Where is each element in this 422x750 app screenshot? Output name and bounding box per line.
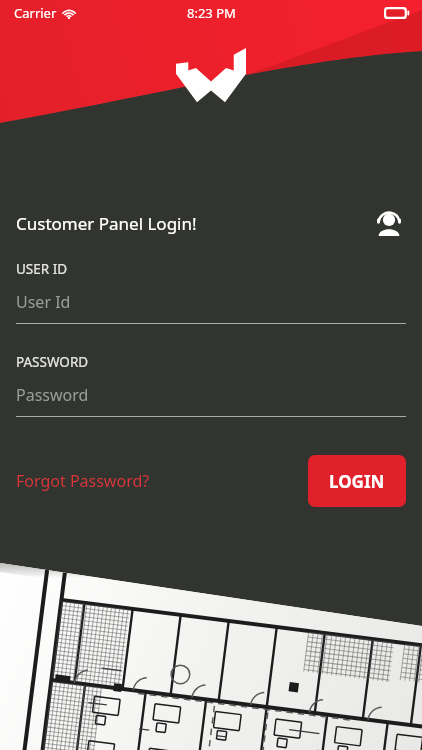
staticText: Carrier [14, 4, 57, 22]
button[interactable]: Forgot Password? [16, 464, 150, 498]
button[interactable]: Password [16, 384, 406, 417]
staticText: USER ID [16, 260, 68, 278]
button[interactable]: User Id [16, 291, 406, 324]
staticText: User Id [16, 291, 71, 313]
staticText: Forgot Password? [16, 470, 150, 492]
staticText: Customer Panel Login! [16, 212, 372, 235]
button[interactable]: LOGIN [308, 455, 406, 507]
button[interactable]: Customer support [372, 206, 406, 240]
staticText: LOGIN [329, 470, 385, 493]
staticText: 8:23 PM [187, 4, 236, 22]
staticText: Password [16, 384, 89, 406]
staticText: PASSWORD [16, 353, 89, 371]
